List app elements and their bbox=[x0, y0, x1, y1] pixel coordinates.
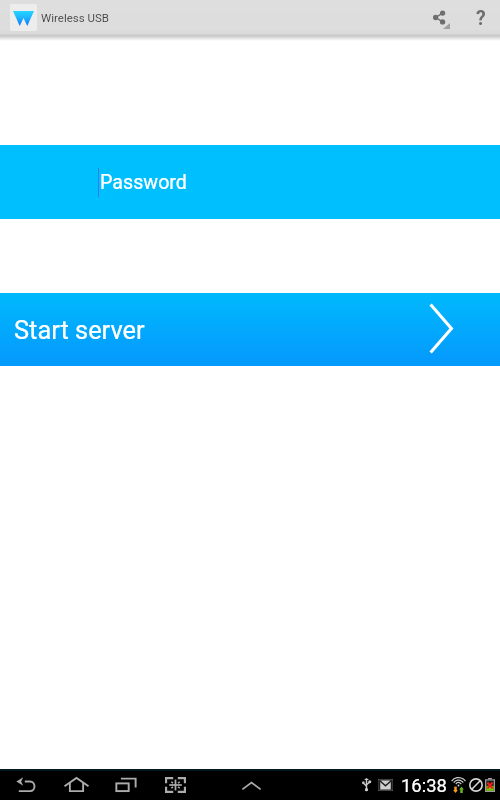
staticText: Wireless USB bbox=[41, 11, 109, 24]
staticText: Start server bbox=[14, 315, 145, 345]
staticText: 16:38 bbox=[401, 775, 447, 797]
button[interactable]: Screenshot bbox=[156, 769, 194, 800]
button[interactable]: Start server bbox=[0, 293, 500, 366]
button[interactable]: Help bbox=[463, 0, 499, 36]
staticText: ? bbox=[476, 7, 486, 30]
button[interactable]: App icon bbox=[10, 4, 37, 31]
button[interactable]: Home bbox=[57, 769, 95, 800]
button[interactable]: Expand notifications bbox=[232, 769, 270, 800]
button[interactable]: Share bbox=[421, 0, 457, 36]
button[interactable]: Back bbox=[7, 769, 45, 800]
button[interactable]: Recent apps bbox=[106, 769, 144, 800]
button[interactable]: Password bbox=[0, 145, 500, 219]
staticText: Password bbox=[100, 171, 187, 194]
